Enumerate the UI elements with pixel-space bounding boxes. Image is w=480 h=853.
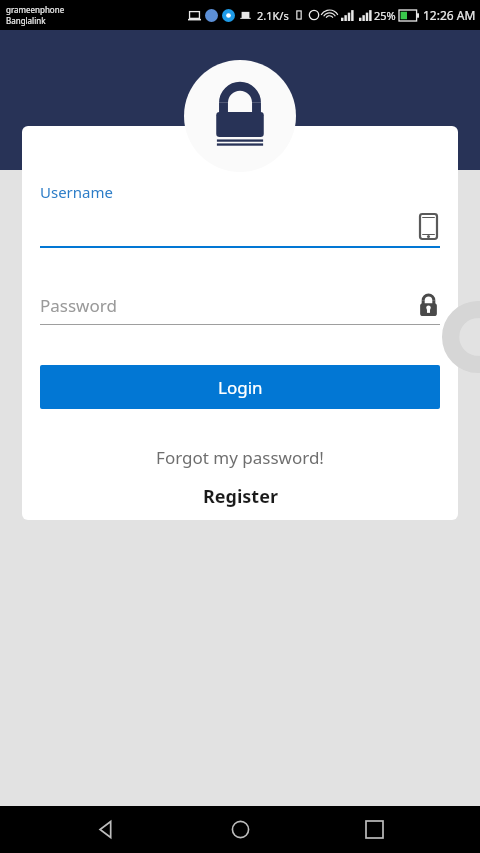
button[interactable]: Register — [22, 479, 458, 513]
button[interactable]: Forgot my password! — [22, 441, 458, 473]
staticText: Register — [203, 484, 278, 509]
button[interactable]: Show password — [414, 291, 442, 319]
button[interactable]: Phone number — [414, 212, 442, 240]
staticText: 25% — [374, 8, 396, 23]
staticText: Password — [40, 294, 117, 317]
staticText: 2.1K/s — [257, 8, 289, 23]
staticText: grameenphone — [6, 4, 65, 15]
staticText: Banglalink — [6, 15, 46, 26]
button[interactable]: Back — [78, 806, 134, 853]
staticText: Username — [40, 182, 113, 202]
button[interactable]: Login — [40, 365, 440, 409]
button[interactable]: Home — [212, 806, 268, 853]
staticText: Login — [218, 376, 263, 399]
button[interactable]: Recent apps — [346, 806, 402, 853]
staticText: 12:26 AM — [423, 7, 476, 23]
staticText: Forgot my password! — [156, 446, 324, 469]
